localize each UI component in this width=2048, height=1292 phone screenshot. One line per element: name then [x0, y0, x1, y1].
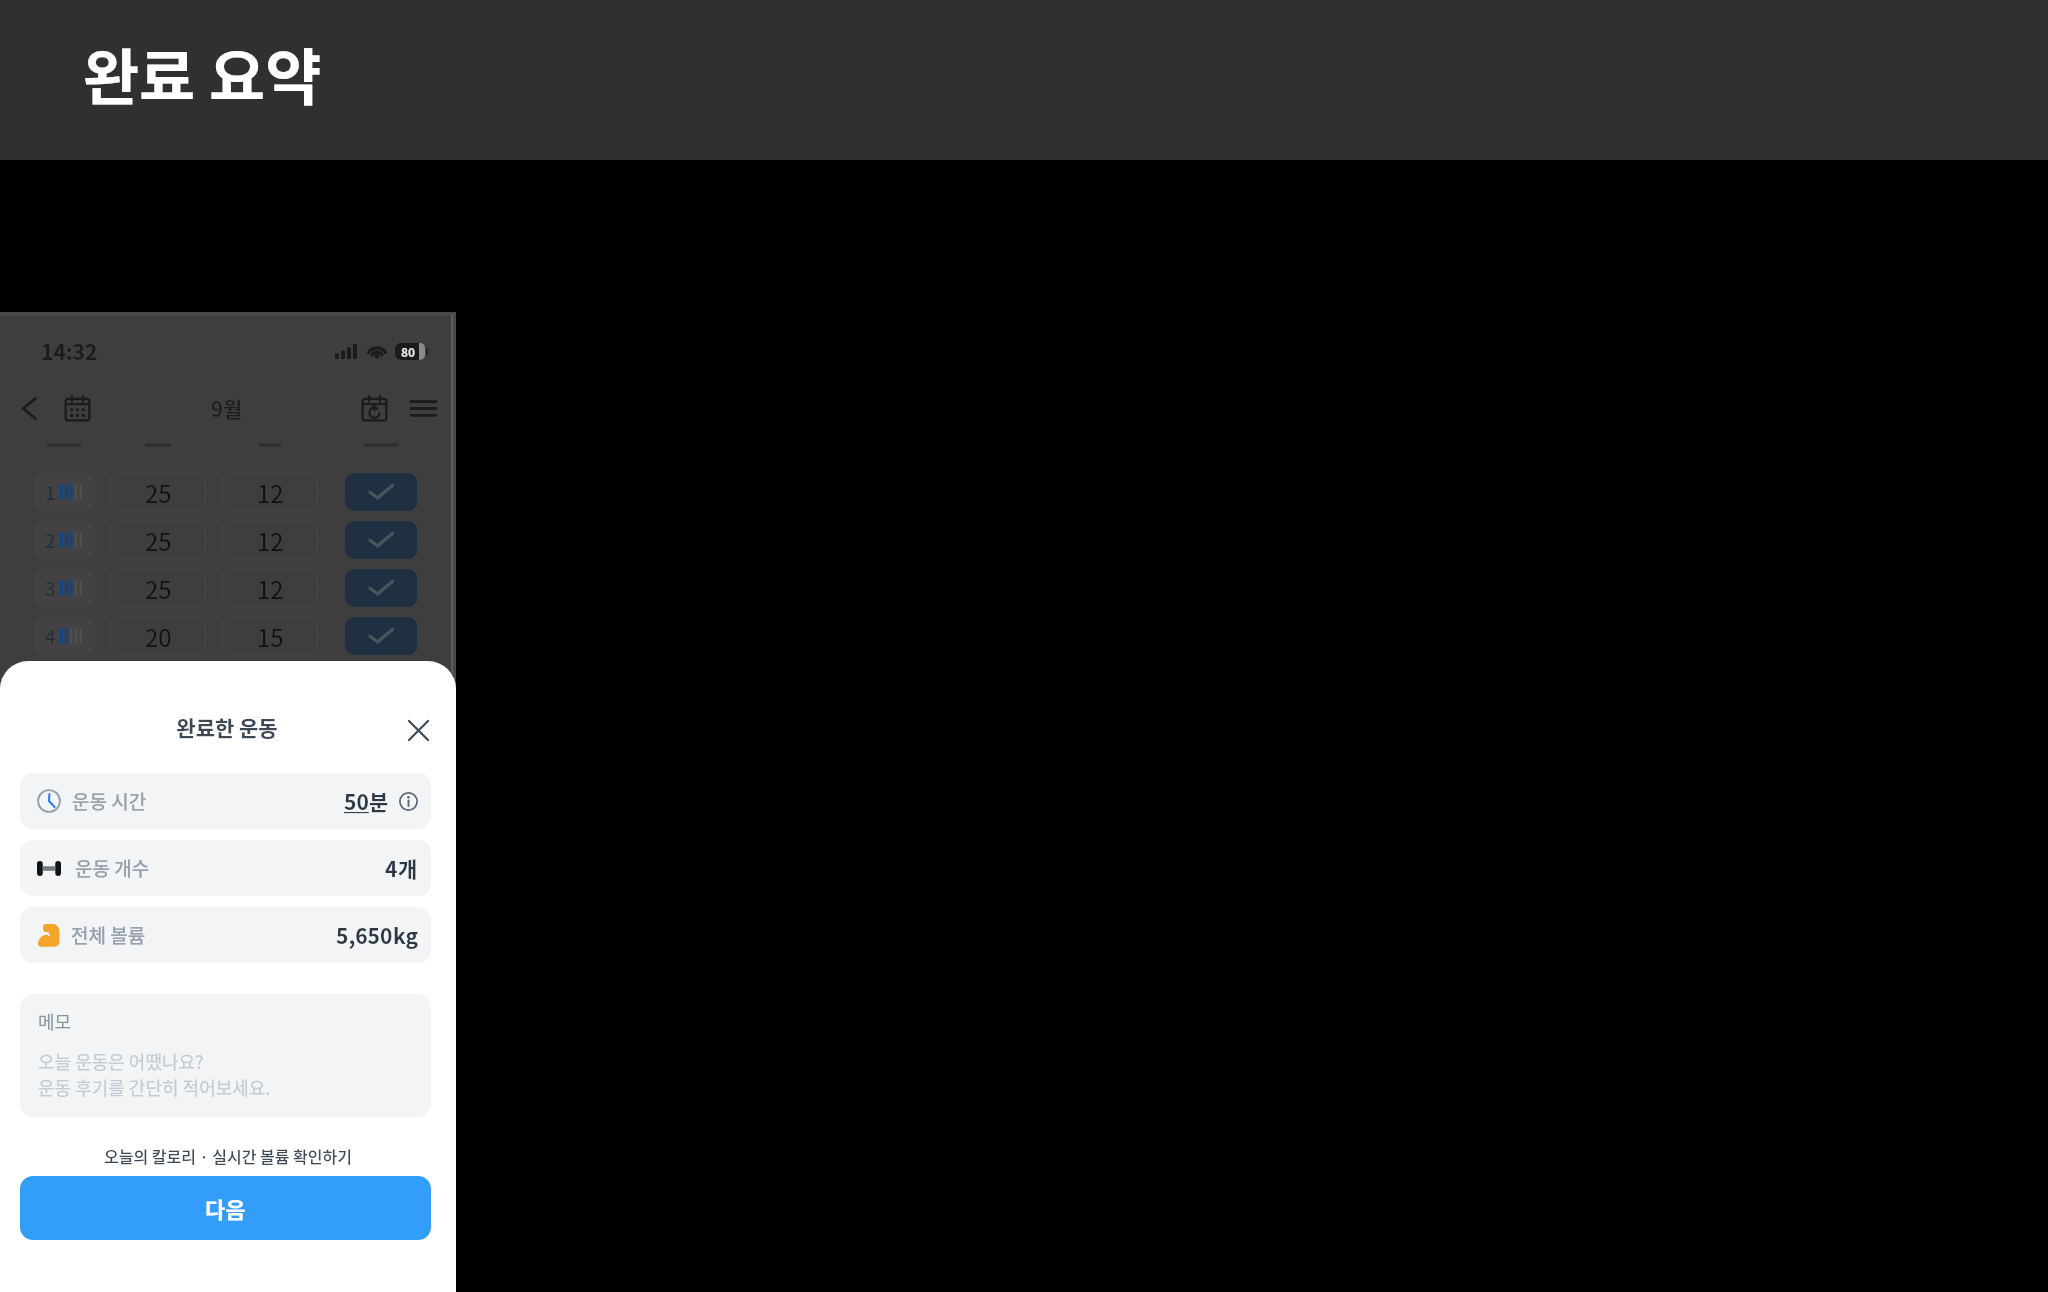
button[interactable]: 전체 볼륨: [20, 907, 431, 963]
button[interactable]: Calendar: [60, 391, 94, 425]
button[interactable]: 오늘의 칼로리 · 실시간 볼륨 확인하기: [0, 1140, 456, 1170]
staticText: 1: [45, 478, 56, 506]
button[interactable]: Completed set 3: [345, 569, 417, 607]
staticText: 20: [145, 619, 172, 654]
staticText: 개: [398, 853, 418, 883]
button[interactable]: 운동 개수: [20, 840, 431, 896]
button[interactable]: 다음: [20, 1176, 431, 1240]
staticText: 메모: [38, 1008, 72, 1034]
staticText: 전체 볼륨: [71, 921, 146, 949]
staticText: kg: [393, 920, 418, 950]
button[interactable]: 25: [110, 569, 206, 607]
button[interactable]: Completed set 2: [345, 521, 417, 559]
button[interactable]: Menu: [405, 390, 441, 426]
staticText: 25: [145, 475, 172, 510]
staticText: 완료 요약: [83, 29, 322, 117]
staticText: 12: [257, 523, 284, 558]
staticText: 12: [257, 475, 284, 510]
button[interactable]: History: [357, 391, 391, 425]
button[interactable]: 메모: [20, 994, 431, 1117]
staticText: 4: [45, 622, 56, 650]
button[interactable]: Close: [398, 710, 438, 750]
button[interactable]: Set 1: [34, 473, 95, 511]
button[interactable]: Set 4: [34, 617, 95, 655]
staticText: 4: [385, 853, 398, 883]
button[interactable]: 12: [222, 473, 318, 511]
staticText: 오늘 운동은 어땠나요? 운동 후기를 간단히 적어보세요.: [38, 1048, 271, 1100]
staticText: 2: [45, 526, 56, 554]
button[interactable]: Set 3: [34, 569, 95, 607]
button[interactable]: 20: [110, 617, 206, 655]
staticText: 14:32: [41, 336, 98, 366]
staticText: 12: [257, 571, 284, 606]
button[interactable]: Completed set 1: [345, 473, 417, 511]
staticText: 다음: [205, 1192, 246, 1224]
staticText: 분: [369, 786, 389, 816]
staticText: 3: [45, 574, 56, 602]
button[interactable]: 운동 시간: [20, 773, 431, 829]
staticText: 25: [145, 523, 172, 558]
staticText: 50: [344, 786, 369, 816]
button[interactable]: Completed set 4: [345, 617, 417, 655]
staticText: 15: [257, 619, 284, 654]
staticText: 오늘의 칼로리 · 실시간 볼륨 확인하기: [104, 1144, 352, 1167]
staticText: 5,650: [336, 920, 393, 950]
staticText: 운동 시간: [72, 787, 147, 815]
staticText: 25: [145, 571, 172, 606]
button[interactable]: 25: [110, 521, 206, 559]
button[interactable]: 12: [222, 569, 318, 607]
staticText: 80: [401, 343, 416, 360]
button[interactable]: 12: [222, 521, 318, 559]
staticText: 완료한 운동: [1, 712, 453, 742]
staticText: 운동 개수: [75, 854, 150, 882]
button[interactable]: Set 2: [34, 521, 95, 559]
button[interactable]: 25: [110, 473, 206, 511]
staticText: 9월: [211, 393, 243, 423]
button[interactable]: 15: [222, 617, 318, 655]
button[interactable]: Back: [9, 388, 49, 428]
